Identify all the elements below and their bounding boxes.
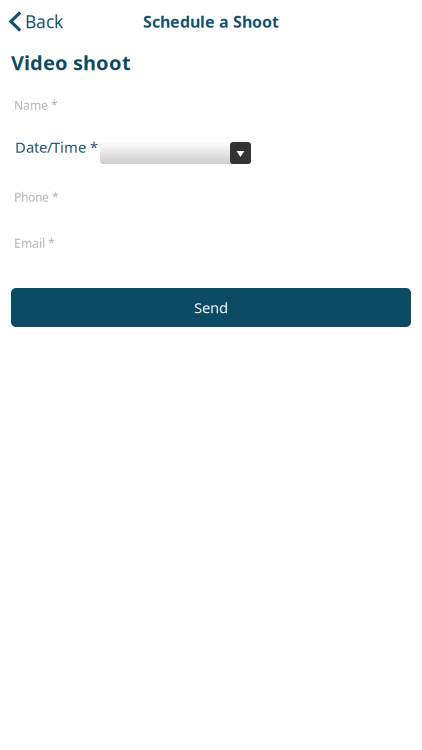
button[interactable]: Send <box>11 288 411 327</box>
staticText: Send <box>194 298 228 317</box>
staticText: Date/Time * <box>15 137 98 157</box>
button[interactable]: Phone * <box>0 174 422 220</box>
staticText: Name * <box>14 97 58 113</box>
button[interactable]: Name * <box>0 82 422 128</box>
staticText: Back <box>25 10 63 33</box>
button[interactable]: Back <box>0 4 71 39</box>
staticText: Email * <box>14 235 55 251</box>
staticText: Schedule a Shoot <box>143 11 279 32</box>
staticText: Video shoot <box>11 49 131 76</box>
staticText: Phone * <box>14 189 59 205</box>
button[interactable]: Email * <box>0 220 422 266</box>
button[interactable] <box>100 142 251 164</box>
